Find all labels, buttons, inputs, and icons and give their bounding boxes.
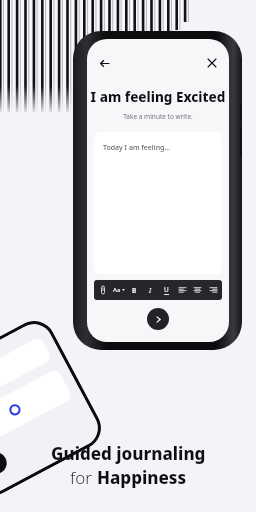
button[interactable]: Align right	[206, 280, 220, 300]
button[interactable]: Today I am feeling...	[94, 132, 222, 274]
button[interactable]: Next	[147, 308, 169, 330]
staticText: Happiness	[97, 466, 187, 489]
button[interactable]: Underline	[159, 280, 173, 300]
staticText: B	[132, 286, 137, 295]
staticText: U	[164, 285, 169, 294]
staticText: I am feeling Excited	[87, 88, 229, 106]
staticText: for	[70, 466, 97, 489]
button[interactable]: Close	[204, 55, 220, 71]
staticText: Guided journaling	[51, 442, 206, 465]
staticText: Aa	[113, 286, 121, 294]
button[interactable]: Align center	[190, 280, 204, 300]
button[interactable]: Back	[96, 55, 112, 71]
button[interactable]: Italic	[143, 280, 157, 300]
staticText: Today I am feeling...	[103, 143, 171, 153]
button[interactable]: Font size	[112, 280, 126, 300]
button[interactable]: Attach	[96, 280, 110, 300]
button[interactable]: Align left	[175, 280, 189, 300]
button[interactable]: Bold	[127, 280, 141, 300]
staticText: I	[149, 286, 152, 295]
staticText: Take a minute to write.	[87, 112, 229, 121]
